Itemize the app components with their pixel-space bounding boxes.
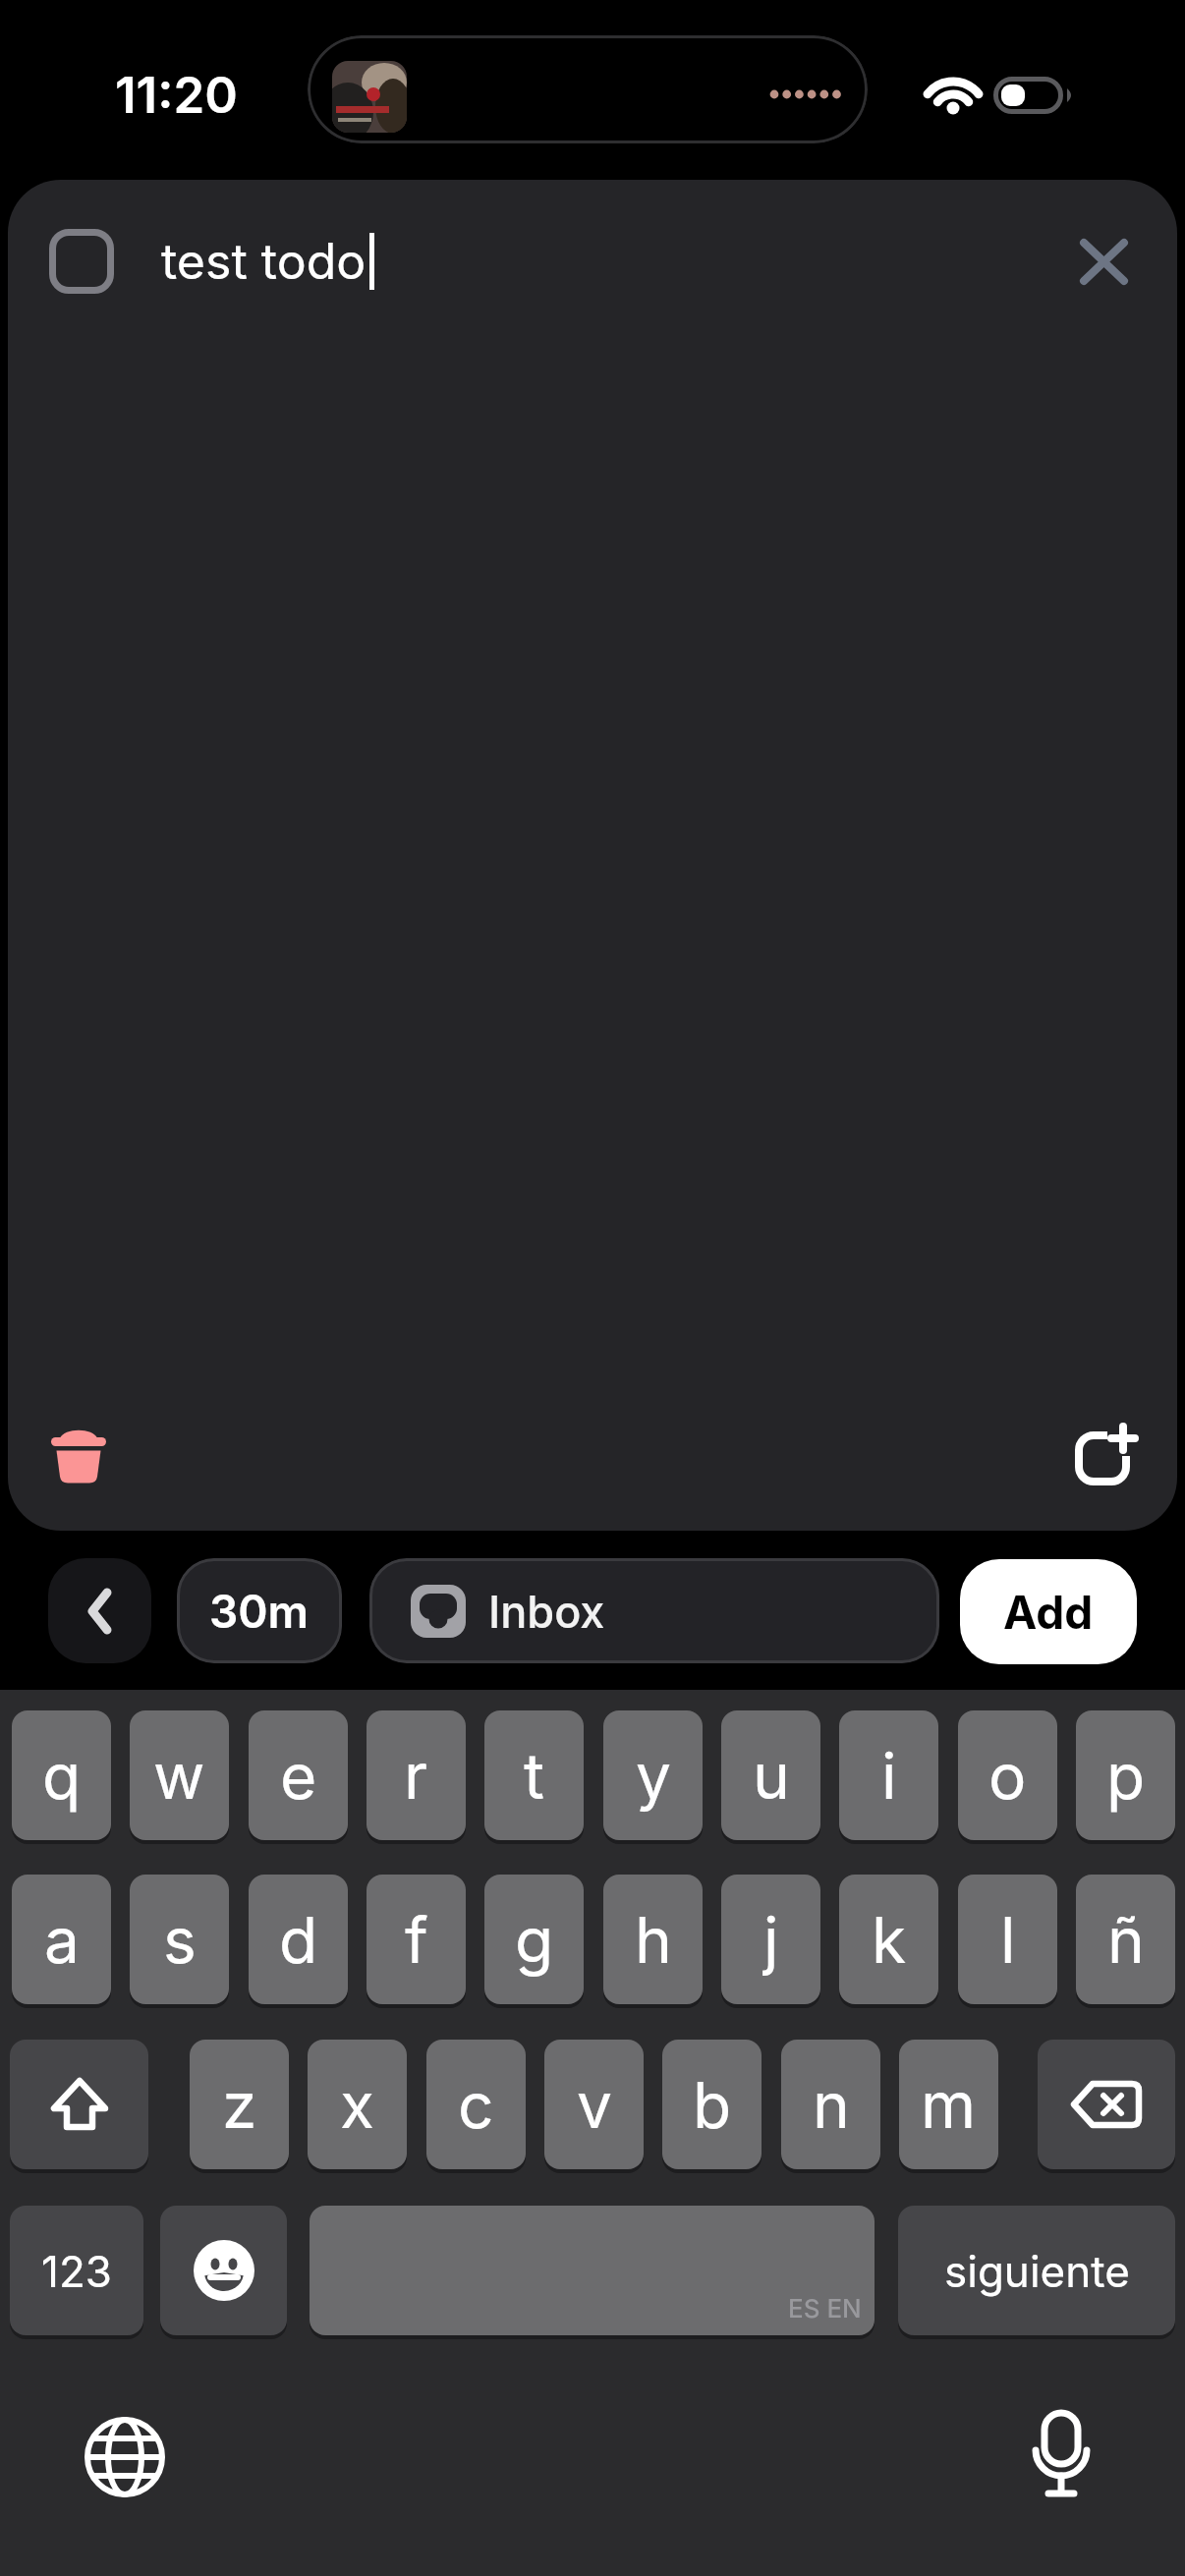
- staticText: test todo: [161, 232, 367, 291]
- button[interactable]: g: [484, 1875, 584, 2004]
- button[interactable]: r: [367, 1710, 466, 1840]
- button[interactable]: [1075, 1423, 1140, 1484]
- staticText: n: [813, 2067, 850, 2143]
- staticText: o: [988, 1738, 1027, 1814]
- staticText: ES EN: [788, 2293, 862, 2324]
- button[interactable]: b: [662, 2040, 762, 2169]
- staticText: h: [635, 1902, 672, 1978]
- button[interactable]: u: [721, 1710, 820, 1840]
- button[interactable]: l: [958, 1875, 1057, 2004]
- button[interactable]: y: [603, 1710, 703, 1840]
- button[interactable]: [1038, 2040, 1175, 2169]
- button[interactable]: n: [781, 2040, 880, 2169]
- staticText: r: [404, 1738, 428, 1814]
- staticText: z: [222, 2067, 257, 2143]
- staticText: y: [636, 1738, 671, 1814]
- button[interactable]: c: [426, 2040, 526, 2169]
- staticText: u: [753, 1738, 790, 1814]
- button[interactable]: ES EN: [310, 2206, 875, 2335]
- staticText: f: [405, 1902, 428, 1978]
- button[interactable]: q: [12, 1710, 111, 1840]
- button[interactable]: 30m: [177, 1558, 342, 1663]
- staticText: m: [921, 2067, 977, 2143]
- button[interactable]: k: [839, 1875, 938, 2004]
- button[interactable]: [160, 2206, 287, 2335]
- staticText: Add: [1003, 1585, 1094, 1640]
- button[interactable]: ñ: [1076, 1875, 1175, 2004]
- button[interactable]: z: [190, 2040, 289, 2169]
- button[interactable]: d: [249, 1875, 348, 2004]
- button[interactable]: j: [721, 1875, 820, 2004]
- button[interactable]: 123: [10, 2206, 143, 2335]
- button[interactable]: [1027, 2411, 1096, 2505]
- button[interactable]: Add: [960, 1559, 1137, 1664]
- button[interactable]: m: [899, 2040, 998, 2169]
- button[interactable]: [10, 2040, 148, 2169]
- staticText: p: [1106, 1738, 1146, 1814]
- staticText: v: [577, 2067, 612, 2143]
- staticText: d: [279, 1902, 318, 1978]
- button[interactable]: x: [308, 2040, 407, 2169]
- staticText: t: [524, 1738, 544, 1814]
- button[interactable]: [51, 1427, 108, 1485]
- staticText: a: [44, 1902, 80, 1978]
- button[interactable]: p: [1076, 1710, 1175, 1840]
- staticText: l: [1000, 1902, 1016, 1978]
- button[interactable]: [85, 2417, 165, 2497]
- button[interactable]: v: [544, 2040, 644, 2169]
- button[interactable]: [1081, 240, 1127, 284]
- staticText: e: [280, 1738, 317, 1814]
- staticText: c: [458, 2067, 494, 2143]
- button[interactable]: [48, 1558, 151, 1663]
- button[interactable]: [49, 229, 114, 294]
- button[interactable]: a: [12, 1875, 111, 2004]
- staticText: 123: [41, 2245, 112, 2297]
- button[interactable]: Inbox: [369, 1558, 939, 1663]
- staticText: k: [872, 1902, 907, 1978]
- button[interactable]: w: [130, 1710, 229, 1840]
- button[interactable]: o: [958, 1710, 1057, 1840]
- staticText: q: [42, 1738, 82, 1814]
- staticText: Inbox: [488, 1585, 605, 1638]
- button[interactable]: f: [367, 1875, 466, 2004]
- staticText: ñ: [1107, 1902, 1145, 1978]
- staticText: x: [340, 2067, 374, 2143]
- staticText: s: [163, 1902, 197, 1978]
- staticText: siguiente: [944, 2245, 1130, 2297]
- staticText: 30m: [209, 1584, 310, 1639]
- staticText: b: [693, 2067, 732, 2143]
- button[interactable]: s: [130, 1875, 229, 2004]
- button[interactable]: h: [603, 1875, 703, 2004]
- staticText: i: [881, 1738, 897, 1814]
- button[interactable]: e: [249, 1710, 348, 1840]
- staticText: j: [763, 1902, 779, 1978]
- staticText: g: [515, 1902, 554, 1978]
- staticText: w: [153, 1738, 205, 1814]
- button[interactable]: siguiente: [898, 2206, 1175, 2335]
- staticText: 11:20: [115, 65, 238, 126]
- button[interactable]: i: [839, 1710, 938, 1840]
- button[interactable]: t: [484, 1710, 584, 1840]
